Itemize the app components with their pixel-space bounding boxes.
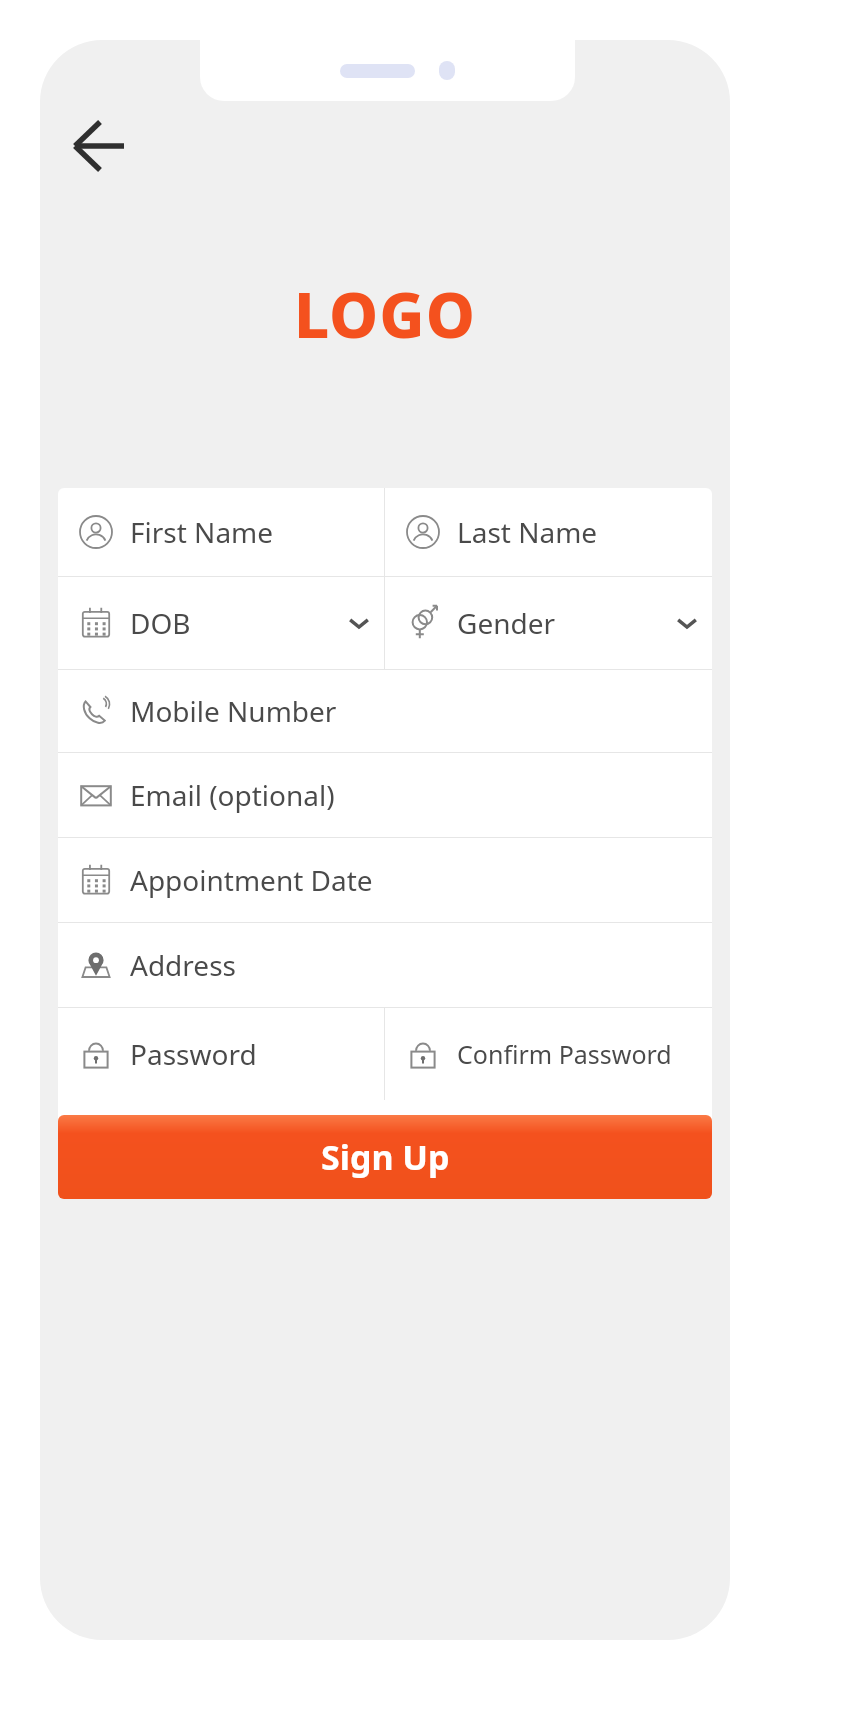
button[interactable]: First Name bbox=[58, 488, 384, 576]
staticText: Address bbox=[130, 946, 236, 984]
staticText: Sign Up bbox=[321, 1134, 450, 1180]
button[interactable]: Mobile Number bbox=[58, 670, 712, 752]
staticText: DOB bbox=[130, 604, 191, 642]
staticText: First Name bbox=[130, 513, 274, 551]
button[interactable]: Email (optional) bbox=[58, 753, 712, 837]
button[interactable]: Confirm Password bbox=[385, 1008, 712, 1100]
button[interactable]: Last Name bbox=[385, 488, 712, 576]
button[interactable]: DOB bbox=[58, 577, 384, 669]
staticText: Mobile Number bbox=[130, 692, 337, 730]
staticText: Confirm Password bbox=[457, 1037, 672, 1071]
button[interactable]: Appointment Date bbox=[58, 838, 712, 922]
staticText: Email (optional) bbox=[130, 776, 335, 814]
button[interactable]: Back bbox=[58, 112, 136, 180]
staticText: Gender bbox=[457, 604, 556, 642]
button[interactable]: Password bbox=[58, 1008, 384, 1100]
staticText: Last Name bbox=[457, 513, 598, 551]
button[interactable]: Gender bbox=[385, 577, 712, 669]
staticText: Password bbox=[130, 1035, 257, 1073]
button[interactable]: Sign Up bbox=[58, 1115, 712, 1199]
button[interactable]: Address bbox=[58, 923, 712, 1007]
staticText: LOGO bbox=[294, 272, 476, 356]
staticText: Appointment Date bbox=[130, 861, 373, 899]
